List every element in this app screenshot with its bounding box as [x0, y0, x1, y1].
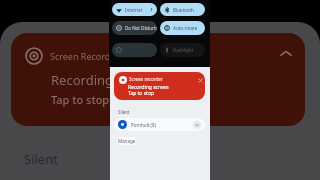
staticText: Auto-rotate — [173, 25, 198, 31]
staticText: Silent — [118, 109, 130, 115]
button[interactable]: Internet — [112, 3, 157, 16]
staticText: Screen Recorder — [50, 50, 120, 62]
other: More settings — [149, 7, 154, 12]
staticText: Silent — [24, 150, 58, 168]
button[interactable]: Screen Recorder — [11, 33, 305, 126]
staticText: Flashlight — [173, 47, 194, 53]
button[interactable] — [112, 43, 157, 57]
button[interactable]: Pornhub (8) — [114, 118, 205, 131]
staticText: Recording screen — [51, 71, 157, 89]
staticText: Internet — [125, 7, 143, 13]
staticText: Tap to stop — [51, 92, 110, 107]
other: Collapse — [279, 47, 293, 61]
staticText: Do Not Disturb — [125, 25, 157, 31]
button[interactable]: Manage — [117, 137, 136, 145]
button[interactable]: Flashlight — [160, 43, 205, 57]
button[interactable]: Auto-rotate — [160, 21, 205, 35]
staticText: Screen recorder — [129, 76, 163, 82]
staticText: Bluetooth — [173, 7, 194, 13]
button[interactable]: Do Not Disturb — [112, 21, 157, 35]
staticText: Tap to stop — [128, 90, 154, 97]
staticText: Pornhub (8) — [131, 122, 156, 128]
other: Expand — [193, 121, 201, 129]
other: Dismiss — [198, 78, 203, 83]
button[interactable]: Bluetooth — [160, 3, 205, 16]
button[interactable]: Screen recorder — [114, 72, 205, 100]
staticText: Manage — [118, 138, 136, 144]
staticText: Recording screen — [128, 84, 169, 91]
